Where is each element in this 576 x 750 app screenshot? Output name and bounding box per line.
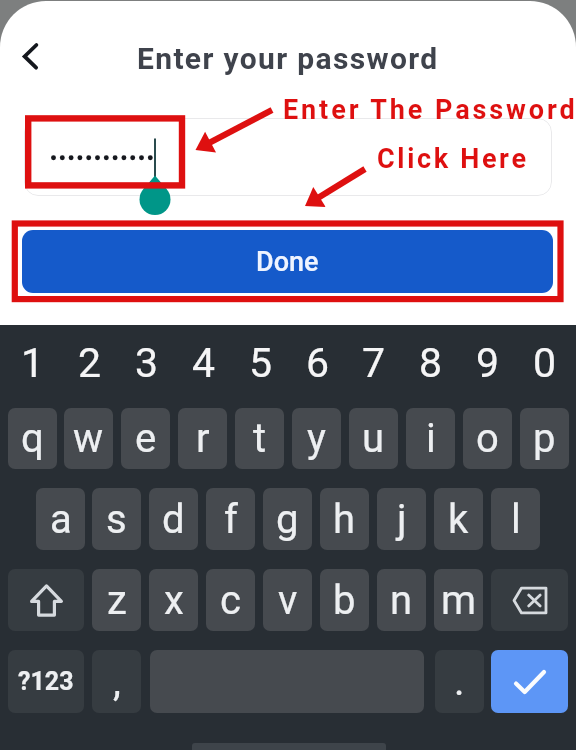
button[interactable]: c: [206, 569, 255, 631]
button[interactable]: 1: [8, 335, 57, 390]
staticText: m: [441, 577, 477, 624]
button[interactable]: l: [491, 488, 540, 550]
staticText: s: [106, 496, 127, 543]
button[interactable]: y: [292, 408, 341, 469]
button[interactable]: d: [149, 488, 198, 550]
button[interactable]: h: [320, 488, 369, 550]
staticText: h: [333, 496, 356, 543]
button[interactable]: r: [178, 408, 227, 469]
button[interactable]: Enter: [491, 650, 568, 713]
staticText: n: [390, 577, 413, 624]
button[interactable]: ,: [92, 650, 141, 713]
staticText: v: [278, 577, 298, 624]
button[interactable]: [24, 118, 552, 196]
staticText: 4: [192, 339, 216, 387]
button[interactable]: Back: [7, 33, 53, 79]
staticText: y: [307, 415, 326, 462]
staticText: o: [476, 415, 499, 462]
staticText: c: [220, 577, 241, 624]
staticText: k: [448, 496, 469, 543]
staticText: x: [164, 577, 184, 624]
staticText: 2: [78, 339, 102, 387]
staticText: j: [397, 496, 407, 543]
staticText: 1: [21, 339, 45, 387]
button[interactable]: u: [349, 408, 398, 469]
staticText: a: [50, 496, 72, 543]
staticText: d: [162, 496, 185, 543]
button[interactable]: b: [320, 569, 369, 631]
button[interactable]: i: [406, 408, 455, 469]
button[interactable]: a: [36, 488, 85, 550]
button[interactable]: 5: [236, 335, 285, 390]
button[interactable]: Backspace: [491, 569, 568, 631]
button[interactable]: 7: [349, 335, 398, 390]
button[interactable]: s: [92, 488, 141, 550]
staticText: 0: [533, 339, 557, 387]
staticText: 3: [135, 339, 159, 387]
staticText: b: [333, 577, 356, 624]
staticText: 9: [476, 339, 500, 387]
button[interactable]: 0: [520, 335, 569, 390]
staticText: Enter The Password: [283, 94, 576, 126]
button[interactable]: n: [377, 569, 426, 631]
button[interactable]: 9: [463, 335, 512, 390]
button[interactable]: m: [434, 569, 483, 631]
button[interactable]: g: [263, 488, 312, 550]
staticText: p: [533, 415, 556, 462]
button[interactable]: w: [64, 408, 113, 469]
button[interactable]: q: [8, 408, 57, 469]
button[interactable]: p: [520, 408, 569, 469]
staticText: w: [73, 415, 104, 462]
staticText: Enter your password: [137, 41, 439, 76]
button[interactable]: f: [206, 488, 255, 550]
staticText: ?123: [18, 667, 74, 696]
staticText: z: [107, 577, 127, 624]
button[interactable]: Shift: [8, 569, 84, 631]
staticText: q: [21, 415, 44, 462]
staticText: Done: [256, 246, 319, 278]
button[interactable]: Done: [22, 230, 553, 293]
button[interactable]: x: [149, 569, 198, 631]
button[interactable]: e: [121, 408, 170, 469]
button[interactable]: k: [434, 488, 483, 550]
staticText: 8: [419, 339, 443, 387]
button[interactable]: .: [435, 650, 484, 713]
button[interactable]: z: [92, 569, 141, 631]
staticText: .: [454, 658, 465, 705]
staticText: u: [362, 415, 385, 462]
button[interactable]: v: [263, 569, 312, 631]
staticText: 7: [362, 339, 386, 387]
button[interactable]: t: [235, 408, 284, 469]
button[interactable]: o: [463, 408, 512, 469]
button[interactable]: 2: [65, 335, 114, 390]
staticText: Click Here: [377, 143, 529, 175]
button[interactable]: 3: [122, 335, 171, 390]
button[interactable]: ?123: [8, 650, 84, 713]
button[interactable]: 4: [179, 335, 228, 390]
staticText: i: [426, 415, 436, 462]
staticText: ,: [113, 658, 121, 705]
staticText: t: [253, 415, 267, 462]
staticText: 6: [306, 339, 330, 387]
staticText: l: [511, 496, 521, 543]
staticText: f: [224, 496, 238, 543]
button[interactable]: 6: [293, 335, 342, 390]
staticText: 5: [249, 339, 273, 387]
staticText: e: [135, 415, 157, 462]
staticText: g: [276, 496, 299, 543]
button[interactable]: j: [377, 488, 426, 550]
staticText: r: [196, 415, 210, 462]
button[interactable]: 8: [406, 335, 455, 390]
